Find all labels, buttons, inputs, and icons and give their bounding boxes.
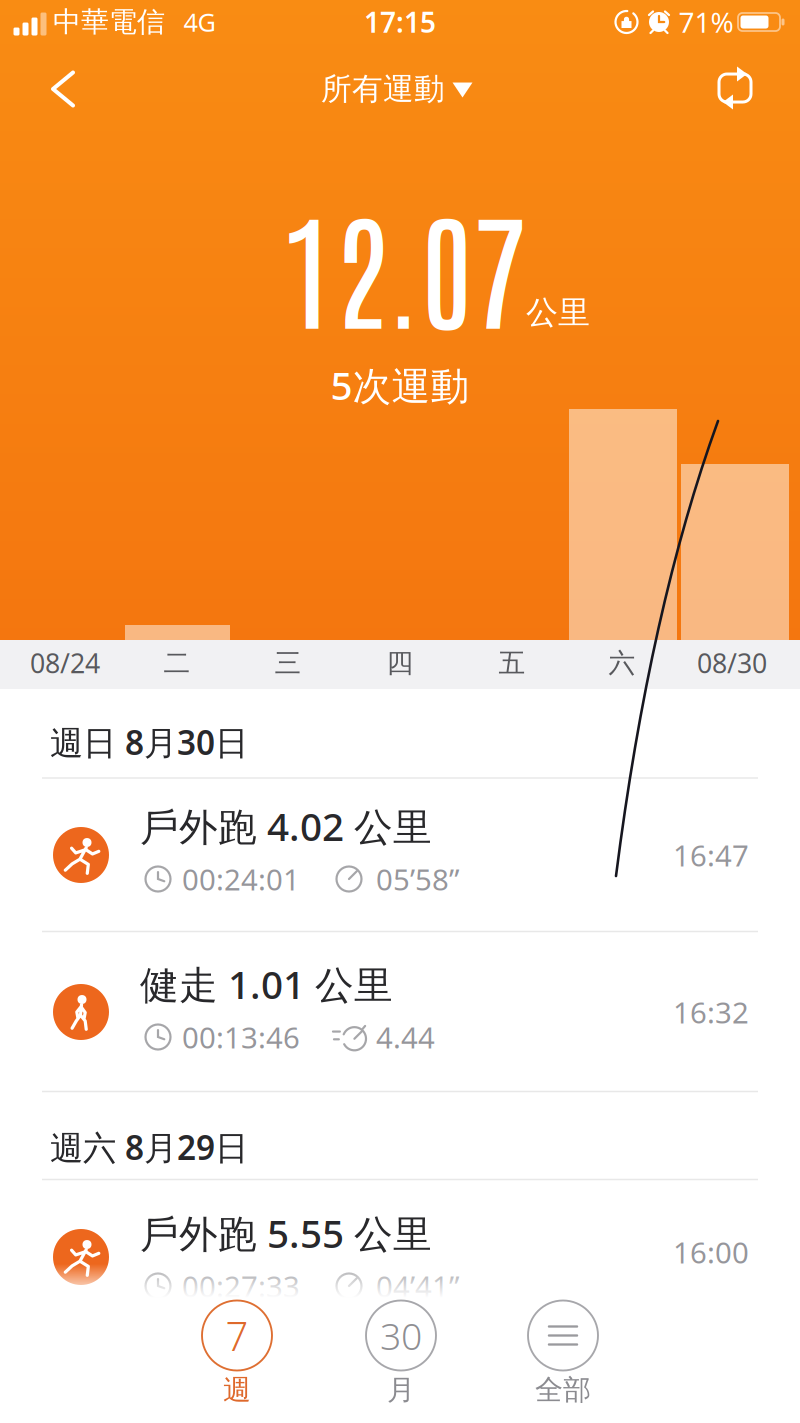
staticText: 30 bbox=[380, 1311, 422, 1360]
staticText: 5次運動 bbox=[330, 359, 469, 411]
staticText: 04’41” bbox=[376, 1266, 460, 1305]
staticText: 12.07 bbox=[281, 182, 526, 346]
staticText: 16:00 bbox=[673, 1232, 749, 1271]
staticText: 中華電信 bbox=[53, 5, 165, 39]
staticText: 二 bbox=[163, 647, 190, 679]
staticText: 四 bbox=[386, 647, 413, 679]
staticText: 六 bbox=[608, 647, 635, 679]
button[interactable]: 所有運動 bbox=[303, 60, 483, 118]
button[interactable]: 戶外跑 4.02 公里 bbox=[0, 0, 800, 1423]
staticText: 7 bbox=[225, 1309, 248, 1362]
staticText: 週日 8月30日 bbox=[50, 720, 248, 764]
staticText: 週六 8月29日 bbox=[50, 1125, 248, 1169]
staticText: 全部 bbox=[535, 1373, 591, 1407]
button[interactable]: 戶外跑 5.55 公里 bbox=[0, 0, 800, 1423]
staticText: 08/30 bbox=[697, 645, 767, 681]
staticText: 16:32 bbox=[673, 992, 749, 1031]
staticText: 16:47 bbox=[673, 835, 749, 874]
staticText: 月 bbox=[387, 1373, 415, 1407]
button[interactable]: Sync bbox=[711, 66, 759, 110]
staticText: 戶外跑 4.02 公里 bbox=[140, 800, 432, 852]
staticText: 00:27:33 bbox=[182, 1266, 300, 1305]
button[interactable]: 7 bbox=[194, 1296, 280, 1408]
staticText: 00:13:46 bbox=[182, 1017, 300, 1056]
button[interactable]: 全部 bbox=[520, 1296, 606, 1408]
staticText: 4.44 bbox=[376, 1017, 435, 1056]
staticText: 三 bbox=[274, 647, 301, 679]
staticText: 戶外跑 5.55 公里 bbox=[140, 1207, 432, 1259]
button[interactable]: 健走 1.01 公里 bbox=[0, 0, 800, 1423]
staticText: 71% bbox=[678, 3, 733, 41]
button[interactable]: 30 bbox=[358, 1296, 444, 1408]
staticText: 17:15 bbox=[364, 3, 436, 41]
staticText: 五 bbox=[498, 647, 525, 679]
button[interactable]: Back bbox=[39, 58, 87, 119]
staticText: 4G bbox=[183, 5, 215, 39]
staticText: 08/24 bbox=[30, 645, 100, 681]
staticText: 公里 bbox=[526, 293, 590, 332]
staticText: 健走 1.01 公里 bbox=[140, 958, 393, 1010]
staticText: 週 bbox=[223, 1373, 251, 1407]
staticText: 05’58” bbox=[376, 859, 460, 898]
staticText: 00:24:01 bbox=[182, 859, 300, 898]
staticText: 所有運動 bbox=[321, 70, 445, 108]
